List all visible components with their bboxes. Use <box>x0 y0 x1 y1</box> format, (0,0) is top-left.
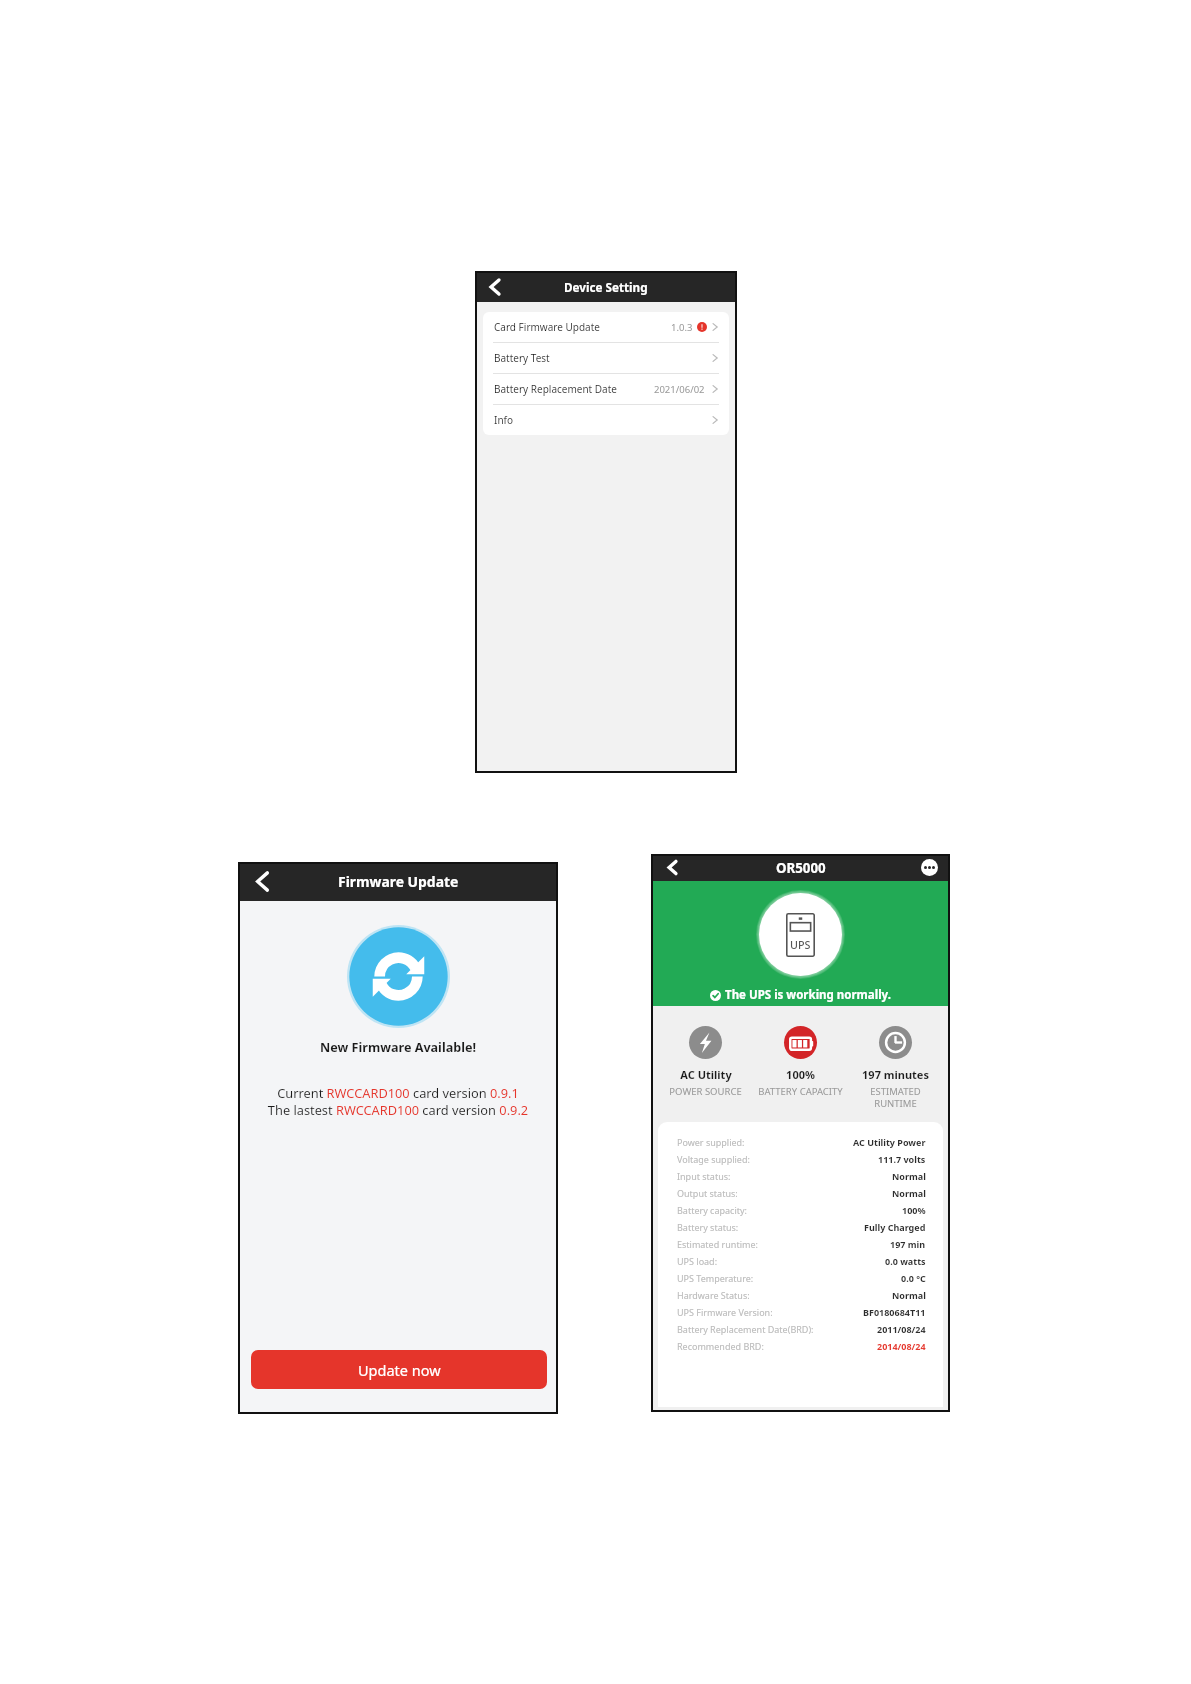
staticText: 2021/06/02 <box>654 383 705 396</box>
staticText: 1.0.3 <box>671 321 693 334</box>
staticText: Firmware Update <box>338 872 459 891</box>
staticText: Battery capacity: <box>677 1204 747 1216</box>
staticText: Current RWCCARD100 card version 0.9.1 <box>238 1084 558 1101</box>
button[interactable]: Back <box>249 868 276 895</box>
staticText: Recommended BRD: <box>677 1340 764 1352</box>
button[interactable]: Update now <box>251 1350 547 1389</box>
staticText: 0.0 watts <box>885 1255 926 1267</box>
button[interactable]: Battery Replacement Date <box>483 374 729 405</box>
staticText: UPS Firmware Version: <box>677 1306 773 1318</box>
staticText: Battery Test <box>494 351 550 365</box>
staticText: Fully Charged <box>864 1221 926 1233</box>
staticText: New Firmware Available! <box>238 1039 558 1056</box>
staticText: BATTERY CAPACITY <box>753 1085 848 1098</box>
staticText: The UPS is working normally. <box>725 987 891 1003</box>
button[interactable]: More options <box>921 859 938 876</box>
staticText: ESTIMATED RUNTIME <box>848 1085 943 1110</box>
staticText: AC Utility <box>680 1067 732 1082</box>
staticText: Info <box>494 413 514 427</box>
staticText: Battery Replacement Date(BRD): <box>677 1323 814 1335</box>
staticText: 100% <box>902 1204 926 1216</box>
staticText: Update now <box>358 1360 441 1380</box>
staticText: 197 min <box>890 1238 926 1250</box>
button[interactable]: Info <box>483 405 729 435</box>
staticText: UPS load: <box>677 1255 718 1267</box>
staticText: Power supplied: <box>677 1136 745 1148</box>
staticText: Output status: <box>677 1187 738 1199</box>
button[interactable]: Battery Test <box>483 343 729 374</box>
staticText: UPS <box>790 937 811 952</box>
staticText: OR5000 <box>776 859 826 877</box>
staticText: Device Setting <box>564 279 648 295</box>
staticText: AC Utility Power <box>853 1136 926 1148</box>
staticText: Battery status: <box>677 1221 739 1233</box>
staticText: Input status: <box>677 1170 731 1182</box>
staticText: Normal <box>892 1170 926 1182</box>
staticText: 100% <box>786 1067 815 1082</box>
staticText: The lastest RWCCARD100 card version 0.9.… <box>238 1101 558 1118</box>
staticText: UPS Temperature: <box>677 1272 754 1284</box>
staticText: Estimated runtime: <box>677 1238 758 1250</box>
staticText: Voltage supplied: <box>677 1153 750 1165</box>
staticText: Battery Replacement Date <box>494 382 617 396</box>
staticText: 2014/08/24 <box>877 1340 926 1352</box>
staticText: Card Firmware Update <box>494 320 600 334</box>
staticText: 0.0 °C <box>901 1272 926 1284</box>
button[interactable]: Back <box>663 858 682 877</box>
button[interactable]: Card Firmware Update <box>483 312 729 343</box>
staticText: Normal <box>892 1289 926 1301</box>
staticText: 111.7 volts <box>878 1153 926 1165</box>
staticText: POWER SOURCE <box>658 1085 753 1098</box>
staticText: 2011/08/24 <box>877 1323 926 1335</box>
staticText: BF0180684T11 <box>863 1306 926 1318</box>
staticText: Hardware Status: <box>677 1289 750 1301</box>
staticText: Normal <box>892 1187 926 1199</box>
button[interactable]: Back <box>484 276 506 298</box>
staticText: 197 minutes <box>862 1067 929 1082</box>
